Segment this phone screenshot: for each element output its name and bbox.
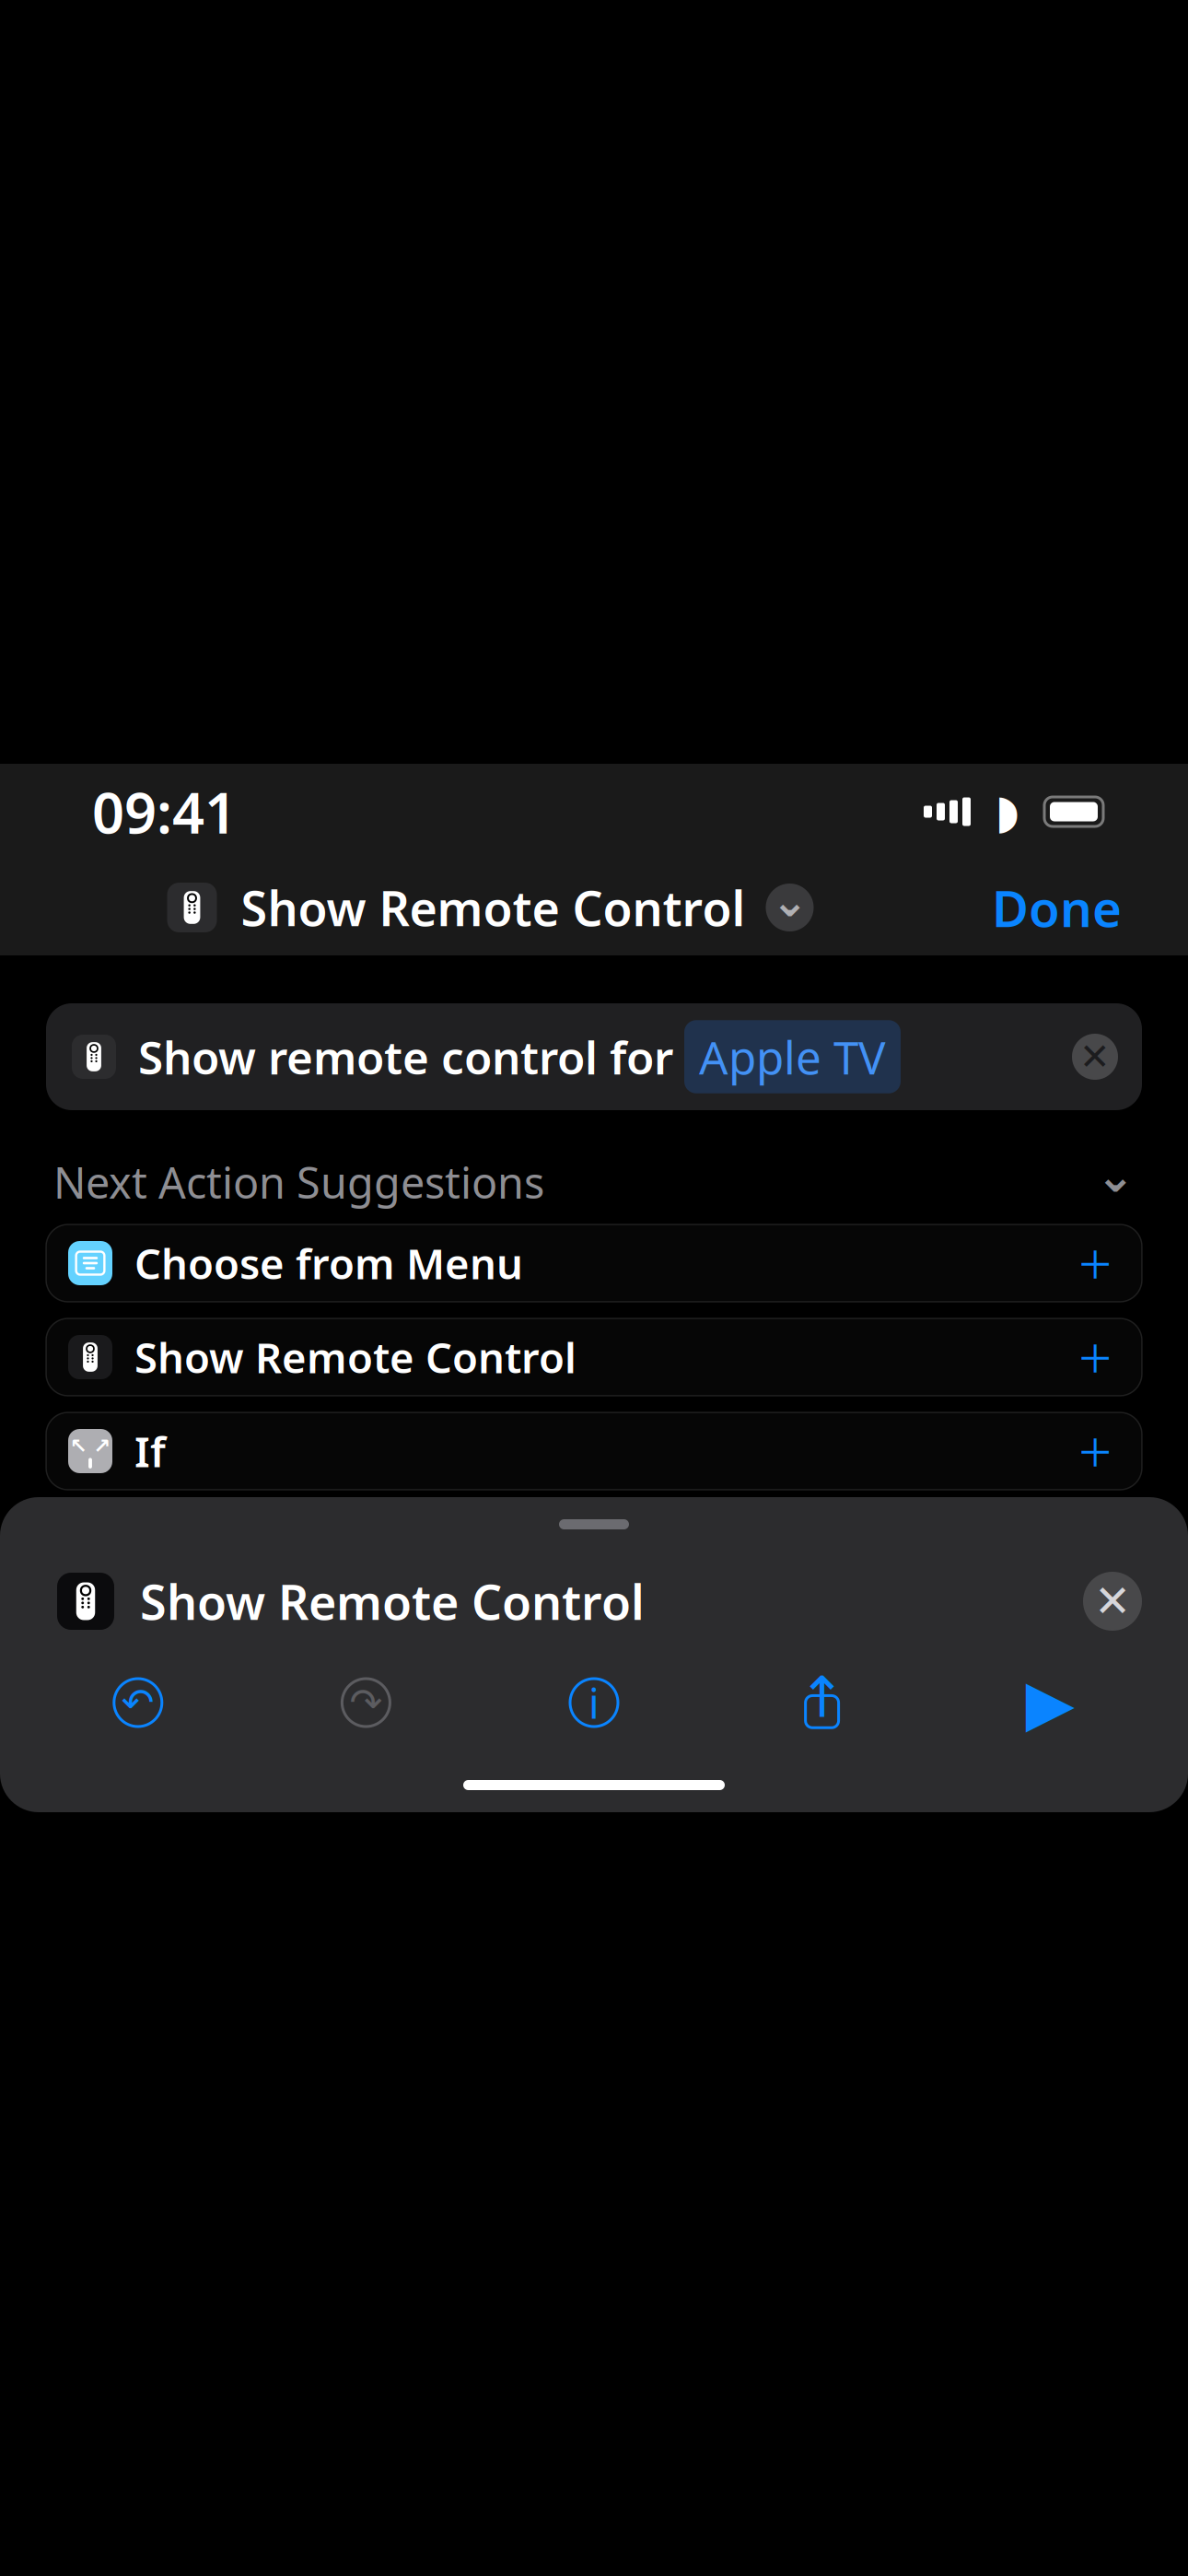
button[interactable]: Choose from Menu	[46, 1224, 1142, 1302]
button[interactable]: Show remote control for	[46, 1003, 1142, 1110]
staticText: Show remote control for	[138, 1027, 673, 1087]
staticText: Done	[992, 874, 1122, 941]
staticText: +	[1078, 1318, 1112, 1396]
button[interactable]: Next Action Suggestions	[53, 1149, 1135, 1215]
staticText: If	[134, 1423, 166, 1479]
staticText: +	[1078, 1412, 1112, 1490]
staticText: ↑	[799, 1665, 846, 1729]
staticText: ▶	[1026, 1666, 1074, 1739]
button[interactable]: Show Remote Control	[46, 1318, 1142, 1396]
staticText: ↗	[93, 1434, 111, 1458]
button[interactable]: Shortcut options	[766, 884, 814, 931]
staticText: ↖	[70, 1434, 87, 1458]
staticText: ↶	[121, 1680, 155, 1725]
button[interactable]: Undo	[24, 1658, 252, 1747]
staticText: ◗	[995, 785, 1020, 838]
staticText: +	[1078, 1224, 1112, 1302]
staticText: ✕	[1094, 1576, 1131, 1626]
staticText: ⌄	[771, 876, 808, 926]
staticText: i	[588, 1675, 600, 1730]
button[interactable]: Done	[981, 863, 1133, 952]
button[interactable]: ↖	[46, 1412, 1142, 1490]
button[interactable]: Share	[708, 1658, 936, 1747]
button[interactable]: Run	[936, 1658, 1164, 1747]
staticText: 09:41	[92, 774, 237, 849]
staticText: ⌄	[1096, 1149, 1135, 1202]
staticText: Show Remote Control	[134, 1329, 577, 1385]
button[interactable]: Redo	[252, 1658, 480, 1747]
button[interactable]: Close	[1083, 1572, 1142, 1631]
staticText: ↷	[349, 1680, 383, 1725]
staticText: Show Remote Control	[140, 1569, 645, 1633]
staticText: ✕	[1079, 1036, 1111, 1078]
staticText: Show Remote Control	[241, 876, 745, 939]
staticText: Apple TV	[699, 1027, 886, 1087]
staticText: Choose from Menu	[134, 1235, 523, 1291]
button[interactable]: Details	[480, 1658, 708, 1747]
staticText: Next Action Suggestions	[53, 1153, 544, 1211]
